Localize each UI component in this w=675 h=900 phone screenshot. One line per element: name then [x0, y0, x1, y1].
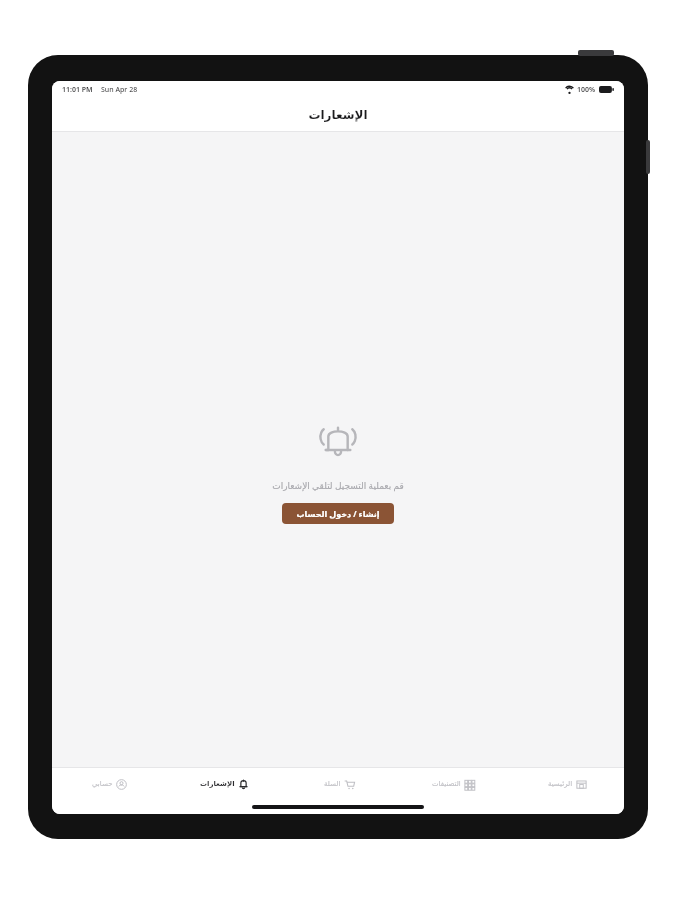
button[interactable]: السلة: [282, 768, 396, 800]
staticText: السلة: [324, 780, 341, 788]
staticText: الإشعارات: [308, 108, 368, 122]
button[interactable]: الرئيسية: [510, 768, 624, 800]
button[interactable]: التصنيفات: [396, 768, 510, 800]
staticText: الإشعارات: [200, 780, 235, 788]
other: No notifications: [316, 421, 360, 465]
staticText: حسابي: [92, 780, 113, 788]
staticText: 11:01 PM: [62, 85, 93, 95]
staticText: 100%: [577, 85, 596, 95]
staticText: الرئيسية: [548, 780, 573, 788]
staticText: قم بعملية التسجيل لتلقي الإشعارات: [272, 479, 404, 491]
staticText: التصنيفات: [432, 780, 461, 788]
staticText: Sun Apr 28: [101, 85, 138, 95]
button[interactable]: حسابي: [52, 768, 167, 800]
staticText: إنشاء / دخول الحساب: [296, 508, 380, 519]
button[interactable]: الإشعارات: [167, 768, 282, 800]
button[interactable]: إنشاء / دخول الحساب: [282, 503, 394, 524]
